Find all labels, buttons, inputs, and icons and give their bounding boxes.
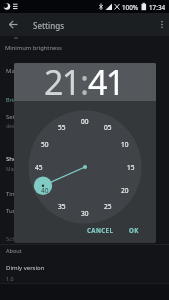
staticText: 40 [41, 186, 49, 195]
staticText: Show notification [6, 155, 55, 163]
button[interactable]: CANCEL [83, 223, 117, 237]
button[interactable] [0, 40, 169, 54]
staticText: Dimly version [6, 264, 45, 272]
staticText: OK [129, 226, 139, 234]
staticText: CANCEL [87, 226, 114, 234]
staticText: Turn off timer [6, 207, 45, 215]
staticText: 15 [127, 163, 135, 172]
staticText: 05 [104, 123, 112, 132]
staticText: Manage dim from status bar [6, 166, 73, 173]
button[interactable]: OK [121, 223, 147, 237]
staticText: 21 [44, 63, 80, 97]
staticText: 20 [121, 186, 129, 195]
staticText: About [6, 247, 22, 254]
button[interactable] [0, 256, 169, 282]
staticText: 35 [58, 202, 66, 211]
staticText: 17:34 [149, 3, 166, 12]
staticText: Set brightness on start [6, 113, 71, 121]
staticText: 10 [121, 140, 129, 149]
staticText: 50 [41, 140, 49, 149]
staticText: Schedule [6, 235, 32, 243]
staticText: Minimum brightness [5, 44, 62, 52]
staticText: Maximum brightness [6, 67, 67, 75]
staticText: 45 [35, 163, 43, 172]
staticText: Settings [33, 20, 65, 31]
staticText: : [80, 63, 88, 97]
staticText: 00 [81, 117, 89, 126]
staticText: 41 [88, 63, 124, 97]
button[interactable] [4, 15, 24, 34]
staticText: 30 [81, 209, 89, 218]
staticText: Timer [6, 190, 23, 198]
staticText: 55 [58, 123, 66, 132]
staticText: device default [6, 123, 39, 130]
staticText: 1.0 [6, 275, 14, 282]
staticText: 100% [122, 3, 139, 12]
staticText: Brightness [6, 96, 34, 103]
button[interactable] [154, 15, 168, 34]
staticText: 25 [104, 202, 112, 211]
